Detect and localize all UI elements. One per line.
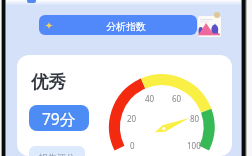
staticText: 0	[130, 140, 135, 151]
staticText: 60	[172, 93, 182, 104]
staticText: 80	[190, 113, 200, 124]
button[interactable]: 分析指数	[39, 15, 197, 35]
staticText: 100	[187, 140, 201, 151]
staticText: 20	[127, 113, 137, 124]
staticText: 报告评分	[39, 152, 75, 156]
staticText: 分析指数	[106, 20, 146, 33]
staticText: 优秀	[31, 71, 66, 93]
staticText: 79分	[42, 108, 76, 129]
button[interactable]: 79分	[29, 105, 89, 131]
staticText: 40	[145, 93, 155, 104]
button[interactable]: 报告评分	[29, 146, 85, 156]
